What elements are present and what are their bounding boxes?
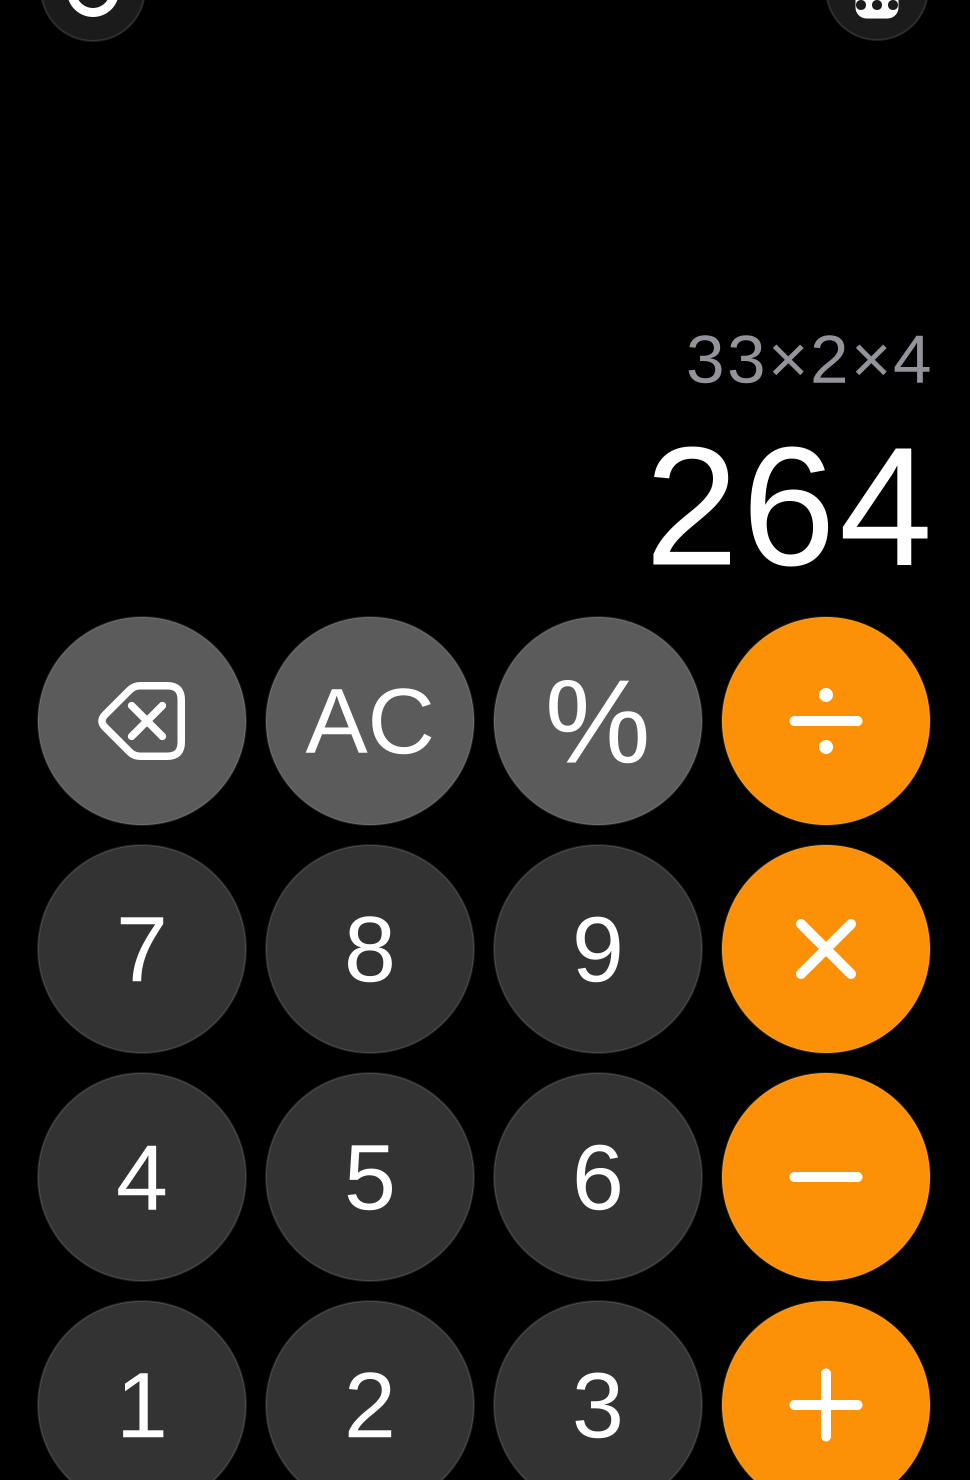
staticText: AC (305, 669, 434, 773)
staticText: 8 (344, 897, 396, 1001)
button[interactable]: 7 (38, 845, 246, 1053)
button[interactable]: Plus (722, 1301, 930, 1480)
button[interactable]: AC (266, 617, 474, 825)
button[interactable]: Divide (722, 617, 930, 825)
staticText: 3 (572, 1353, 624, 1457)
button[interactable]: Back (41, 0, 145, 41)
button[interactable]: 1 (38, 1301, 246, 1480)
button[interactable]: 8 (266, 845, 474, 1053)
staticText: 7 (116, 897, 168, 1001)
button[interactable]: 9 (494, 845, 702, 1053)
button[interactable]: Minus (722, 1073, 930, 1281)
button[interactable]: Multiply (722, 845, 930, 1053)
staticText: 264 (645, 412, 932, 600)
staticText: 6 (572, 1125, 624, 1229)
button[interactable]: More (826, 0, 928, 40)
staticText: 33×2×4 (686, 320, 932, 397)
button[interactable]: 3 (494, 1301, 702, 1480)
button[interactable]: 2 (266, 1301, 474, 1480)
button[interactable]: Delete (38, 617, 246, 825)
button[interactable]: % (494, 617, 702, 825)
staticText: % (545, 655, 651, 787)
button[interactable]: 6 (494, 1073, 702, 1281)
staticText: 1 (116, 1353, 168, 1457)
button[interactable]: 4 (38, 1073, 246, 1281)
staticText: 9 (572, 897, 624, 1001)
button[interactable]: 5 (266, 1073, 474, 1281)
staticText: 4 (116, 1125, 168, 1229)
staticText: 5 (344, 1125, 396, 1229)
staticText: 2 (344, 1353, 396, 1457)
